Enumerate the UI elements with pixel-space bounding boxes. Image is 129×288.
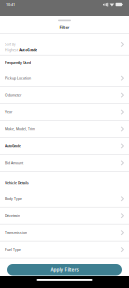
button[interactable]: Bid Amount [0, 155, 129, 171]
staticText: Filter [59, 24, 69, 30]
staticText: Pickup Location [5, 76, 31, 80]
button[interactable]: Make, Model, Trim [0, 121, 129, 137]
button[interactable]: Drivetrain [0, 208, 129, 224]
staticText: Drivetrain [5, 213, 20, 218]
button[interactable]: Year [0, 104, 129, 120]
button[interactable]: Odometer [0, 87, 129, 103]
staticText: AutoGrade [5, 144, 21, 148]
staticText: Fuel Type [5, 247, 21, 252]
staticText: Apply Filters [50, 267, 78, 273]
staticText: Transmission [5, 230, 27, 235]
staticText: Frequently Used [5, 61, 31, 65]
button[interactable]: AutoGrade [0, 138, 129, 154]
button[interactable]: Fuel Type [0, 241, 129, 258]
staticText: Vehicle Details [5, 181, 29, 185]
button[interactable]: Apply Filters [7, 264, 122, 275]
button[interactable]: Sort By [0, 34, 129, 55]
staticText: Bid Amount [5, 161, 23, 165]
staticText: 10:41 [6, 2, 15, 7]
staticText: Highest [5, 48, 18, 52]
staticText: AutoGrade [19, 48, 37, 52]
staticText: Year [5, 110, 12, 114]
button[interactable]: Transmission [0, 225, 129, 241]
button[interactable]: Body Type [0, 191, 129, 207]
staticText: Sort By [5, 42, 15, 46]
staticText: Odometer [5, 93, 21, 97]
staticText: Body Type [5, 197, 22, 201]
staticText: Make, Model, Trim [5, 127, 35, 131]
button[interactable]: Pickup Location [0, 70, 129, 86]
